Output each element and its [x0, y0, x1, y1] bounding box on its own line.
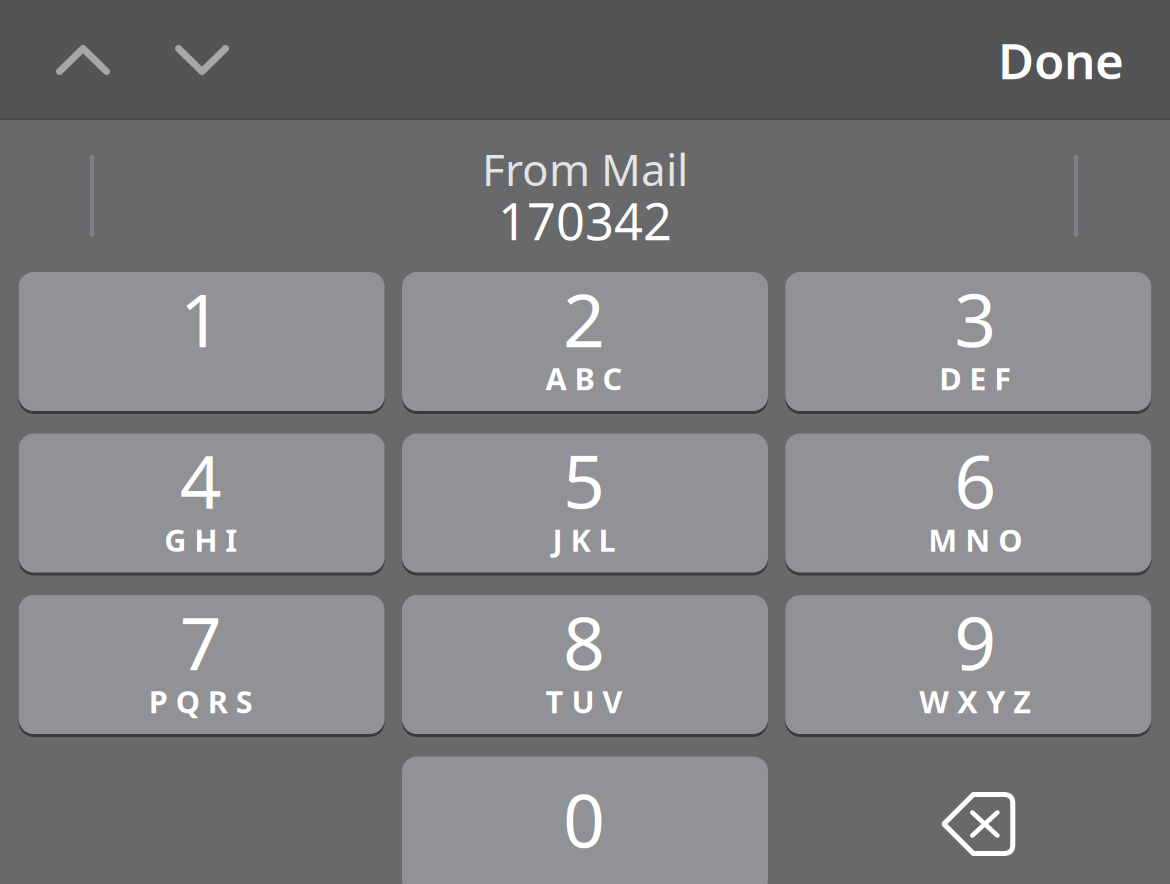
button[interactable]: From Mail [95, 120, 1075, 272]
button[interactable]: 0 [402, 756, 768, 884]
staticText: 9 [954, 593, 996, 690]
staticText: M N O [928, 519, 1022, 560]
button[interactable]: Delete [785, 756, 1151, 884]
button[interactable]: 9 [785, 595, 1151, 734]
button[interactable]: 3 [785, 272, 1151, 411]
button[interactable]: 5 [402, 433, 768, 572]
staticText: 8 [563, 593, 605, 690]
staticText: 5 [563, 431, 605, 529]
button[interactable]: 4 [19, 433, 385, 572]
button[interactable]: 1 [19, 272, 385, 411]
staticText: 2 [563, 270, 605, 367]
button[interactable]: 2 [402, 272, 768, 411]
staticText: A B C [545, 358, 622, 399]
button[interactable]: Previous field [28, 0, 138, 120]
button[interactable]: Next field [147, 0, 257, 120]
staticText: 1 [180, 270, 222, 367]
staticText: 4 [180, 431, 222, 529]
staticText: 7 [180, 593, 222, 690]
staticText: 3 [954, 270, 996, 367]
button[interactable]: Done [976, 0, 1146, 120]
staticText: T U V [545, 681, 622, 722]
staticText: 6 [954, 431, 996, 529]
button[interactable]: 6 [785, 433, 1151, 572]
staticText: D E F [939, 358, 1011, 399]
staticText: P Q R S [149, 681, 253, 722]
staticText: G H I [164, 519, 237, 560]
button[interactable]: 8 [402, 595, 768, 734]
button[interactable]: 7 [19, 595, 385, 734]
staticText: 0 [563, 770, 605, 868]
staticText: From Mail [482, 140, 688, 198]
staticText: 170342 [498, 187, 672, 254]
staticText: W X Y Z [919, 681, 1031, 722]
staticText: Done [998, 27, 1124, 93]
staticText: J K L [552, 519, 615, 560]
